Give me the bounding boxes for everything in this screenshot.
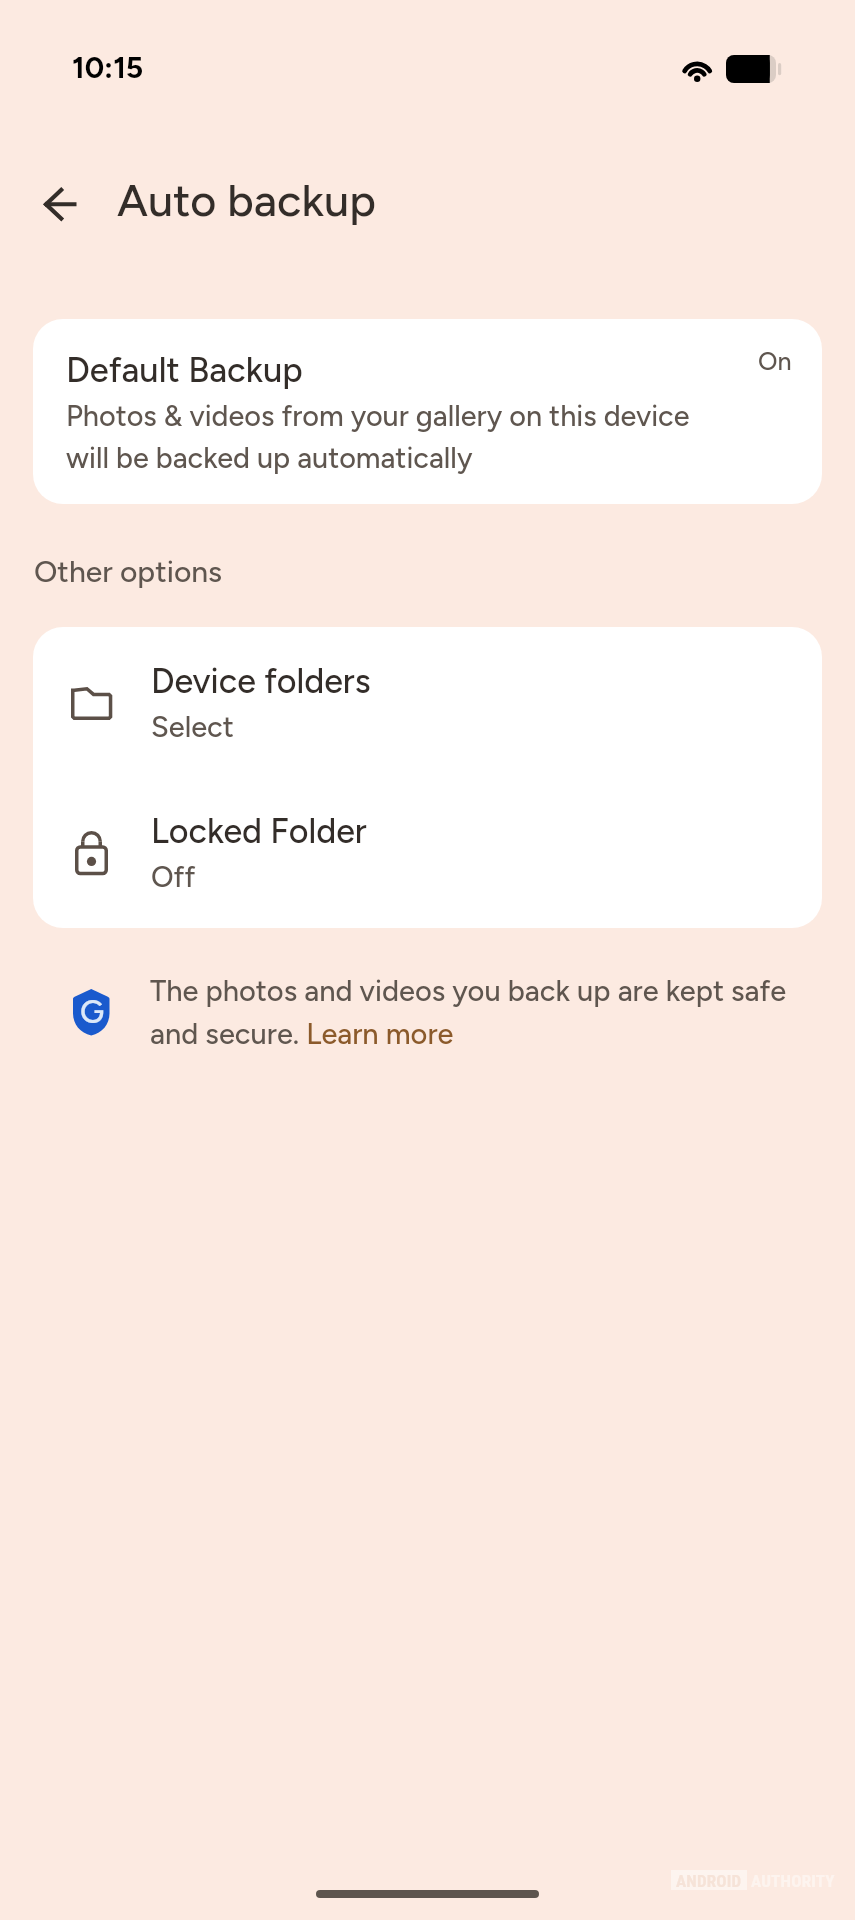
button[interactable]: Locked Folder (33, 777, 822, 927)
button[interactable]: Default Backup (33, 319, 822, 504)
staticText: Other options (34, 553, 223, 589)
staticText: Off (151, 859, 196, 894)
button[interactable]: Back (29, 173, 93, 237)
staticText: AUTHORITY (751, 1871, 835, 1891)
button[interactable]: Device folders (33, 627, 822, 777)
button[interactable]: Learn more (308, 1017, 456, 1051)
staticText: Locked Folder (151, 811, 367, 852)
staticText: Select (151, 709, 234, 744)
staticText: G (80, 993, 105, 1031)
staticText: 10:15 (72, 49, 144, 85)
staticText: Default Backup (66, 349, 303, 390)
staticText: ANDROID (676, 1871, 742, 1891)
staticText: Device folders (151, 661, 371, 702)
staticText: The photos and videos you back up are ke… (150, 973, 787, 1051)
staticText: On (758, 346, 792, 376)
staticText: Photos & videos from your gallery on thi… (66, 399, 690, 475)
staticText: Auto backup (117, 173, 376, 227)
